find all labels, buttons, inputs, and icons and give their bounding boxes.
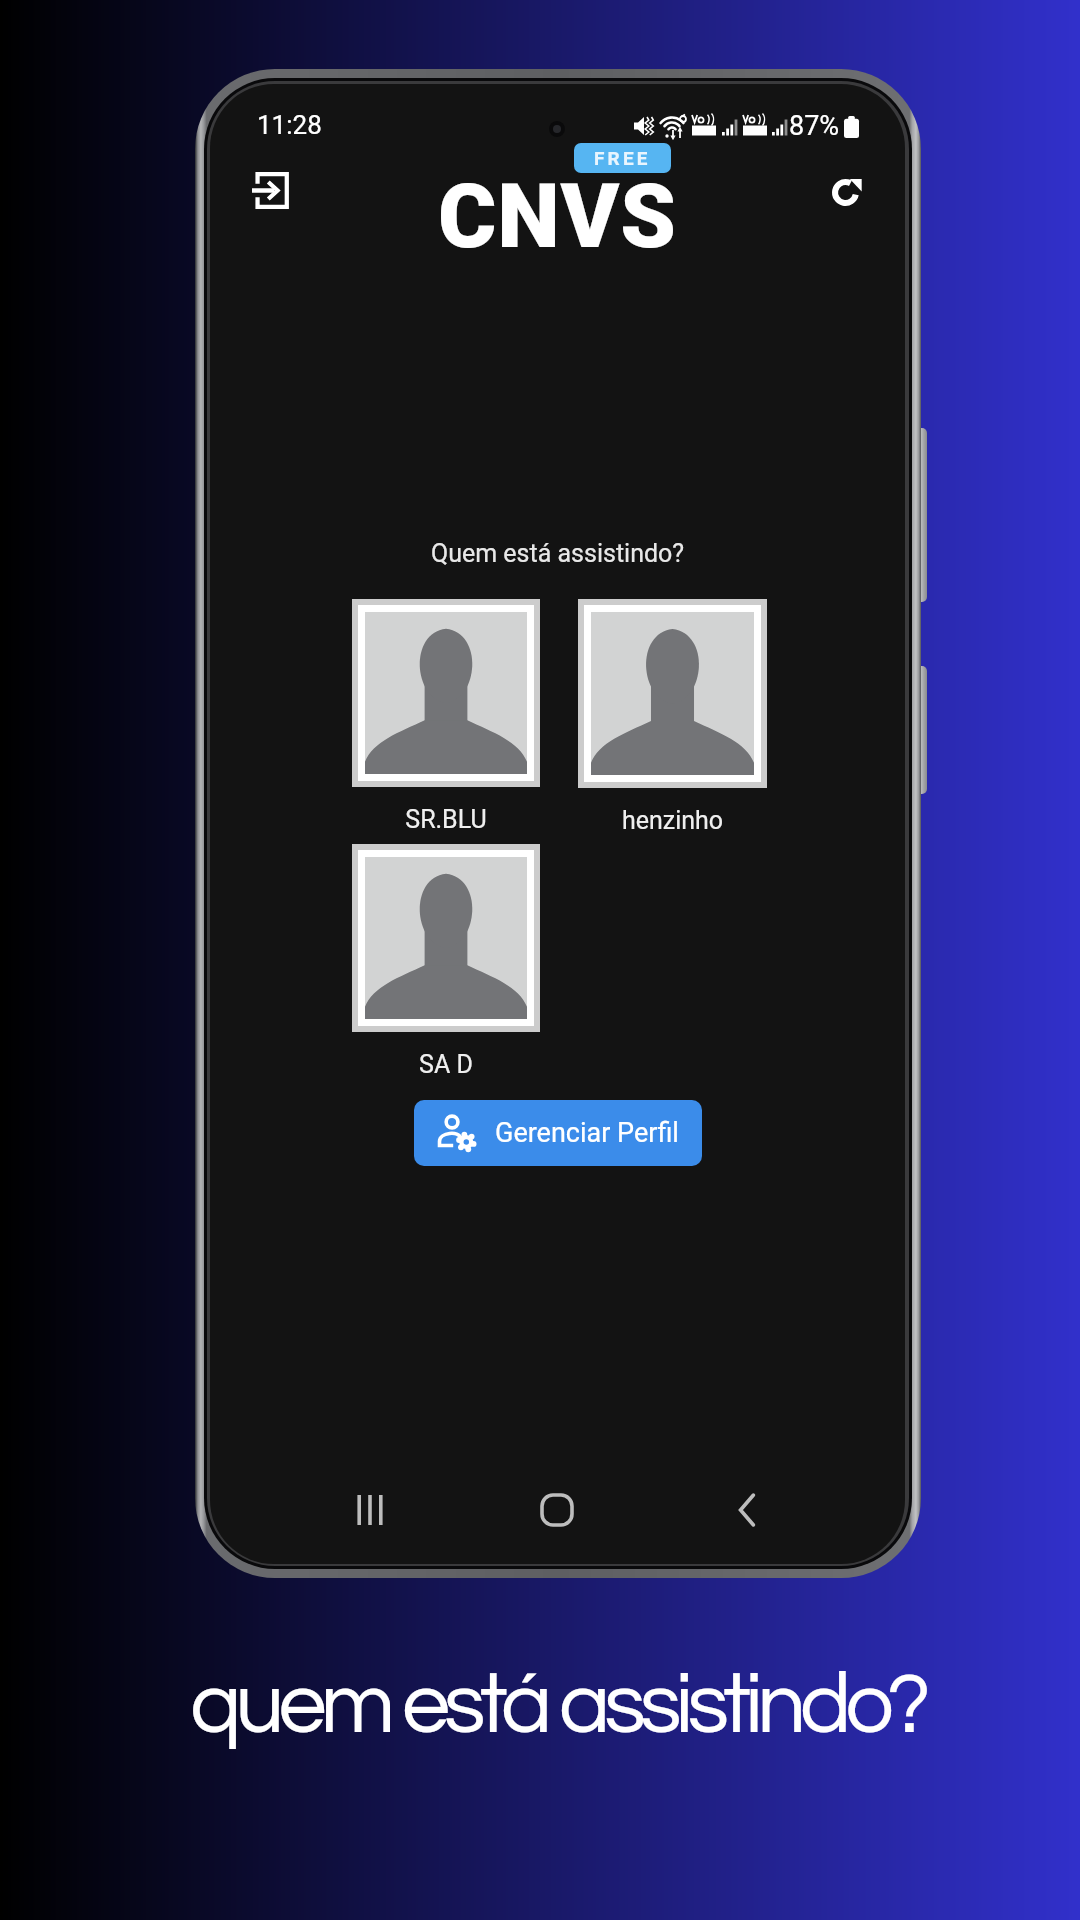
button[interactable] <box>352 844 540 1032</box>
staticText: SR.BLU <box>352 805 540 834</box>
button[interactable] <box>352 599 540 787</box>
button[interactable]: Início <box>517 1470 597 1550</box>
staticText: henzinho <box>578 806 767 835</box>
button[interactable]: Recentes <box>330 1470 410 1550</box>
staticText: FREE <box>594 147 651 169</box>
button[interactable]: Voltar <box>708 1470 788 1550</box>
staticText: CNVS <box>438 164 677 268</box>
button[interactable] <box>578 599 767 788</box>
staticText: Gerenciar Perfil <box>495 1117 679 1149</box>
staticText: 11:28 <box>257 110 322 140</box>
button[interactable]: Sair <box>240 160 300 220</box>
staticText: quem está assistindo? <box>190 1661 925 1750</box>
staticText: SA D <box>352 1050 540 1079</box>
staticText: Quem está assistindo? <box>431 539 685 568</box>
button[interactable]: Atualizar <box>815 162 875 222</box>
button[interactable]: Gerenciar Perfil <box>414 1100 702 1166</box>
staticText: 87% <box>789 110 840 142</box>
